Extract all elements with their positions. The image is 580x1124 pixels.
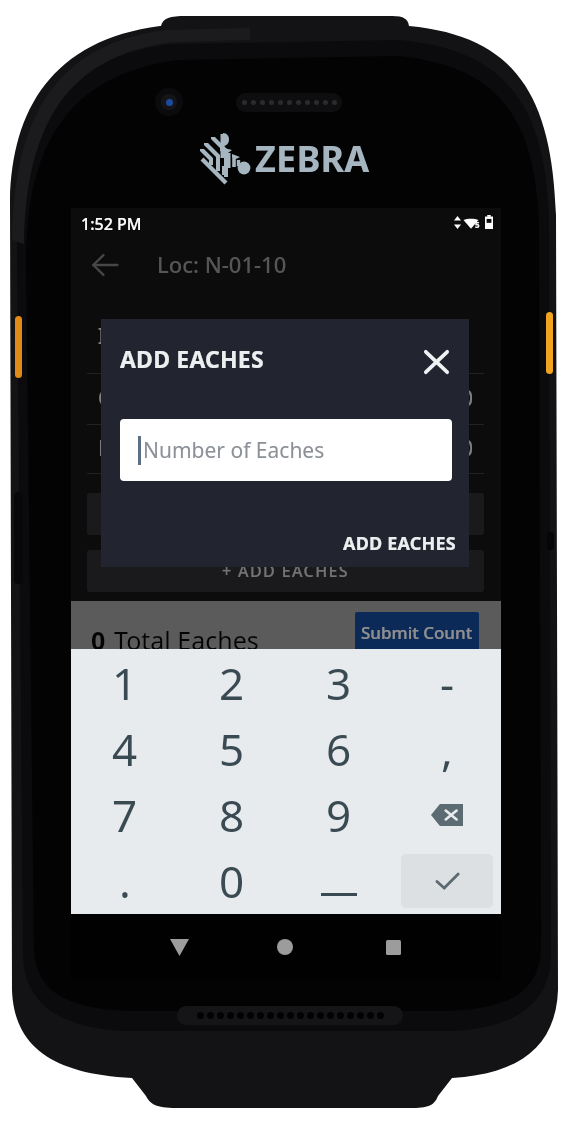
button[interactable]: -: [393, 649, 501, 716]
button[interactable]: + ADD EACHES: [87, 550, 484, 592]
button[interactable]: Number of Eaches: [120, 419, 452, 481]
button[interactable]: Backspace: [393, 782, 501, 848]
button[interactable]: .: [71, 848, 178, 914]
staticText: 3: [326, 653, 352, 713]
staticText: 2: [219, 653, 245, 713]
button[interactable]: 2: [178, 649, 285, 716]
staticText: 5: [219, 719, 245, 779]
button[interactable]: 3: [285, 649, 393, 716]
staticText: Submit Count: [361, 621, 473, 644]
button[interactable]: Home: [263, 925, 307, 969]
staticText: 7: [112, 785, 138, 845]
staticText: Eaches: [98, 434, 167, 463]
button[interactable]: 4: [71, 716, 178, 782]
button[interactable]: 7: [71, 782, 178, 848]
staticText: Cases: [98, 384, 156, 413]
staticText: 9: [326, 785, 352, 845]
staticText: 5: [475, 219, 480, 230]
button[interactable]: 1: [71, 649, 178, 716]
button[interactable]: 8: [178, 782, 285, 848]
staticText: ZEBRA: [255, 134, 370, 183]
staticText: 6: [326, 719, 352, 779]
staticText: Number of Eaches: [143, 436, 325, 465]
staticText: .: [119, 851, 131, 911]
button[interactable]: 6: [285, 716, 393, 782]
other: Space: [285, 848, 393, 914]
button[interactable]: Close dialog: [412, 338, 460, 386]
staticText: 0: [461, 384, 474, 413]
other: Backspace: [393, 782, 501, 848]
staticText: Item 4071-PK: [98, 322, 232, 351]
button[interactable]: Back: [157, 925, 201, 969]
button[interactable]: 9: [285, 782, 393, 848]
staticText: 0: [461, 434, 474, 463]
button[interactable]: Enter: [393, 848, 501, 914]
staticText: -: [440, 653, 455, 713]
other: Enter: [401, 854, 493, 908]
button[interactable]: [87, 493, 484, 535]
staticText: 0: [91, 623, 106, 657]
staticText: Total Eaches: [114, 623, 259, 657]
button[interactable]: ADD EACHES: [335, 525, 464, 562]
staticText: 4: [112, 719, 138, 779]
staticText: ,: [441, 719, 453, 779]
button[interactable]: Recents: [371, 925, 415, 969]
staticText: 8: [219, 785, 245, 845]
staticText: Loc: N-01-10: [157, 249, 287, 279]
staticText: + ADD EACHES: [222, 560, 350, 582]
button[interactable]: Back: [82, 242, 128, 288]
button[interactable]: 5: [178, 716, 285, 782]
button[interactable]: Space: [285, 848, 393, 914]
button[interactable]: Submit Count: [355, 612, 479, 656]
button[interactable]: 0: [178, 848, 285, 914]
staticText: ADD EACHES: [120, 343, 264, 374]
staticText: 0: [219, 851, 245, 911]
staticText: 1:52 PM: [81, 213, 142, 235]
staticText: ADD EACHES: [343, 531, 456, 556]
button[interactable]: ,: [393, 716, 501, 782]
staticText: 1: [112, 653, 138, 713]
